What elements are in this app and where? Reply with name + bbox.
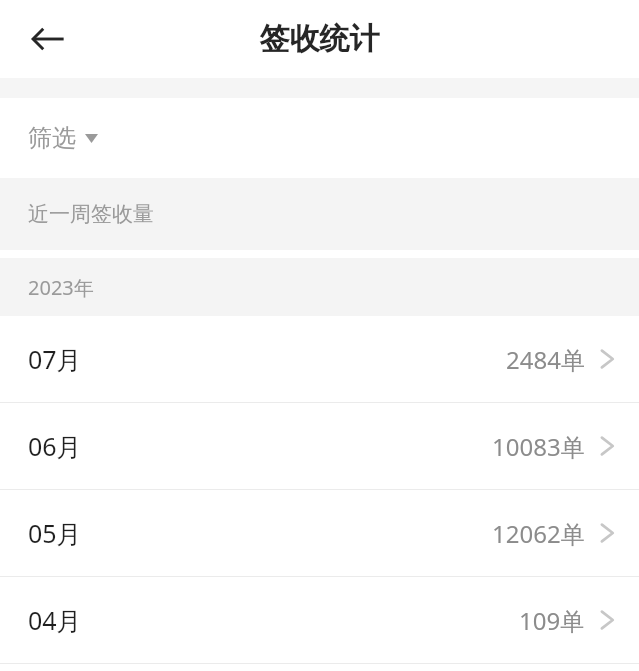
button[interactable]: 07月 bbox=[0, 316, 639, 402]
staticText: 12062单 bbox=[492, 517, 585, 550]
button[interactable]: 04月 bbox=[0, 577, 639, 663]
button[interactable]: 06月 bbox=[0, 403, 639, 489]
staticText: 筛选 bbox=[28, 123, 76, 153]
staticText: 10083单 bbox=[492, 430, 585, 463]
staticText: 07月 bbox=[28, 342, 82, 376]
staticText: 近一周签收量 bbox=[28, 201, 154, 227]
staticText: 签收统计 bbox=[0, 20, 639, 58]
button[interactable]: Back bbox=[18, 9, 78, 69]
staticText: 2023年 bbox=[28, 274, 94, 301]
staticText: 109单 bbox=[519, 604, 585, 637]
button[interactable]: 05月 bbox=[0, 490, 639, 576]
staticText: 2484单 bbox=[506, 343, 585, 376]
staticText: 04月 bbox=[28, 603, 82, 637]
staticText: 06月 bbox=[28, 429, 82, 463]
staticText: 05月 bbox=[28, 516, 82, 550]
button[interactable]: 筛选 bbox=[0, 98, 639, 178]
